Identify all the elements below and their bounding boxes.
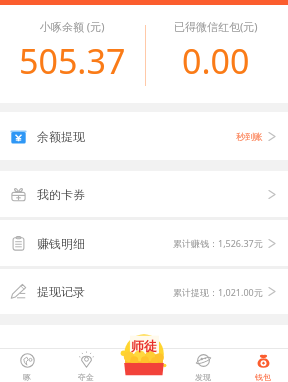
staticText: 已得微信红包(元) [174, 19, 258, 34]
button[interactable]: 夺金 [59, 348, 113, 382]
staticText: 0.00 [182, 38, 250, 84]
button[interactable]: 啄 [0, 348, 54, 382]
button[interactable]: 发现 [176, 348, 230, 382]
button[interactable]: 钱包 [236, 348, 288, 382]
staticText: 师徒 [131, 338, 157, 354]
staticText: 505.37 [19, 38, 126, 84]
button[interactable]: 提现记录 [0, 269, 288, 314]
button[interactable]: 我的卡券 [0, 171, 288, 217]
staticText: 夺金 [78, 372, 94, 382]
button[interactable]: 师徒 [122, 333, 166, 377]
button[interactable]: 余额提现 [0, 112, 288, 160]
button[interactable]: 赚钱明细 [0, 220, 288, 266]
staticText: 余额提现 [37, 129, 85, 144]
button[interactable]: 师徒 [115, 348, 173, 382]
staticText: 啄 [23, 372, 31, 382]
staticText: 赚钱明细 [37, 236, 85, 251]
staticText: 我的卡券 [37, 187, 85, 202]
staticText: 钱包 [255, 372, 271, 382]
staticText: 累计提现：1,021.00元 [173, 286, 263, 298]
staticText: 秒到账 [236, 131, 263, 142]
staticText: 累计赚钱：1,526.37元 [173, 237, 263, 249]
staticText: 小啄余额 (元) [40, 19, 105, 34]
staticText: 提现记录 [37, 284, 85, 299]
staticText: 发现 [195, 372, 211, 382]
